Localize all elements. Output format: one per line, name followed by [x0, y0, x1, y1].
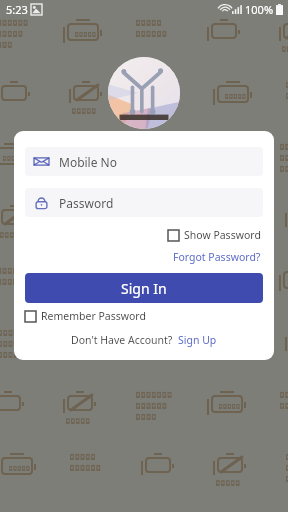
- button[interactable]: Sign In: [25, 273, 263, 303]
- button[interactable]: Mobile No: [25, 147, 263, 176]
- button[interactable]: Sign Up: [177, 333, 218, 347]
- staticText: 100%: [245, 2, 274, 17]
- staticText: 5:23: [6, 2, 28, 17]
- staticText: Mobile No: [59, 154, 117, 170]
- staticText: Sign In: [121, 279, 167, 298]
- staticText: Don't Have Account?: [71, 333, 173, 347]
- button[interactable]: Forgot Password?: [171, 249, 263, 265]
- button[interactable]: Show Password: [166, 226, 263, 244]
- button[interactable]: Remember Password: [25, 308, 146, 324]
- staticText: Show Password: [184, 228, 261, 242]
- button[interactable]: Password: [25, 188, 263, 217]
- staticText: Password: [59, 195, 114, 211]
- staticText: Remember Password: [41, 309, 146, 323]
